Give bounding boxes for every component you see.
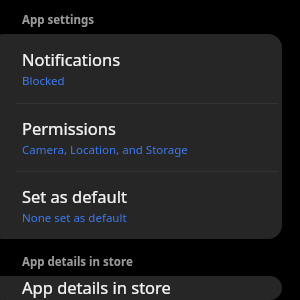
- staticText: App details in store: [22, 254, 133, 270]
- button[interactable]: App details in store: [0, 276, 282, 300]
- staticText: App details in store: [22, 276, 171, 298]
- button[interactable]: Notifications: [0, 34, 282, 103]
- staticText: None set as default: [22, 210, 127, 226]
- button[interactable]: Permissions: [0, 104, 282, 171]
- staticText: Notifications: [22, 48, 121, 70]
- staticText: Permissions: [22, 117, 116, 139]
- staticText: Camera, Location, and Storage: [22, 142, 188, 158]
- staticText: Set as default: [22, 185, 127, 207]
- staticText: Blocked: [22, 73, 65, 89]
- staticText: App settings: [22, 12, 95, 28]
- button[interactable]: Set as default: [0, 172, 282, 239]
